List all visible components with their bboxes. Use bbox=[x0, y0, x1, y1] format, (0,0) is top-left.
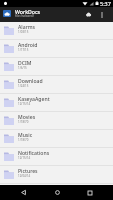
staticText: Download bbox=[18, 78, 43, 85]
staticText: Android bbox=[18, 42, 38, 49]
staticText: 1/24/15 bbox=[18, 84, 29, 88]
button[interactable]: Music bbox=[0, 130, 113, 148]
staticText: file:/sdcard/ bbox=[15, 13, 34, 18]
staticText: 1/17/15 bbox=[18, 48, 29, 52]
staticText: Podcasts bbox=[18, 185, 40, 192]
button[interactable]: Recents bbox=[79, 185, 101, 200]
button[interactable]: WorkDocs bbox=[3, 10, 11, 17]
staticText: 12/15/14 bbox=[18, 156, 31, 160]
button[interactable]: Alarms bbox=[0, 22, 113, 40]
staticText: KaseyaAgent bbox=[18, 96, 50, 103]
staticText: Movies bbox=[18, 114, 36, 121]
staticText: Alarms bbox=[18, 24, 36, 31]
staticText: Notifications bbox=[18, 150, 50, 157]
button[interactable]: Notifications bbox=[0, 148, 113, 166]
staticText: 12/04/14 bbox=[18, 191, 31, 195]
staticText: 12/04/14 bbox=[18, 174, 31, 178]
button[interactable]: Movies bbox=[0, 112, 113, 130]
button[interactable]: More options bbox=[95, 7, 108, 22]
button[interactable]: Home bbox=[46, 185, 68, 200]
button[interactable]: Android bbox=[0, 40, 113, 58]
button[interactable]: DCIM bbox=[0, 58, 113, 76]
button[interactable]: Upload bbox=[82, 7, 95, 22]
button[interactable]: Back bbox=[12, 185, 34, 200]
staticText: Music bbox=[18, 132, 33, 139]
staticText: WorkDocs bbox=[15, 8, 41, 15]
staticText: 1/18/70 bbox=[18, 120, 29, 124]
staticText: Pictures bbox=[18, 168, 38, 175]
staticText: 5:37 bbox=[100, 0, 111, 7]
staticText: 12/15/14 bbox=[18, 102, 31, 106]
button[interactable]: Pictures bbox=[0, 166, 113, 184]
staticText: 1/18/70 bbox=[18, 138, 29, 142]
button[interactable]: KaseyaAgent bbox=[0, 94, 113, 112]
button[interactable]: Podcasts bbox=[0, 184, 113, 200]
staticText: DCIM bbox=[18, 60, 32, 67]
button[interactable]: Download bbox=[0, 76, 113, 94]
staticText: 1/6/15 bbox=[18, 66, 27, 70]
staticText: 1/03/15 bbox=[18, 30, 29, 34]
